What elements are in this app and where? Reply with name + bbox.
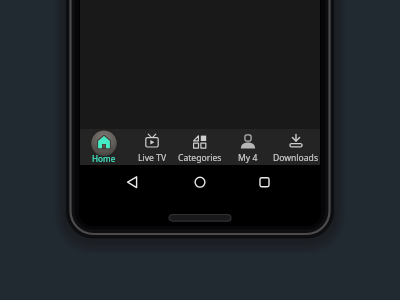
staticText: My 4: [238, 152, 258, 164]
button[interactable]: Home: [80, 129, 128, 165]
staticText: Live TV: [138, 152, 167, 164]
button[interactable]: Categories: [176, 129, 224, 165]
button[interactable]: Live TV: [128, 129, 176, 165]
staticText: Home: [92, 153, 116, 164]
button[interactable]: My 4: [224, 129, 272, 165]
button[interactable]: Downloads: [272, 129, 320, 165]
staticText: Downloads: [273, 152, 319, 164]
staticText: Categories: [178, 152, 222, 164]
